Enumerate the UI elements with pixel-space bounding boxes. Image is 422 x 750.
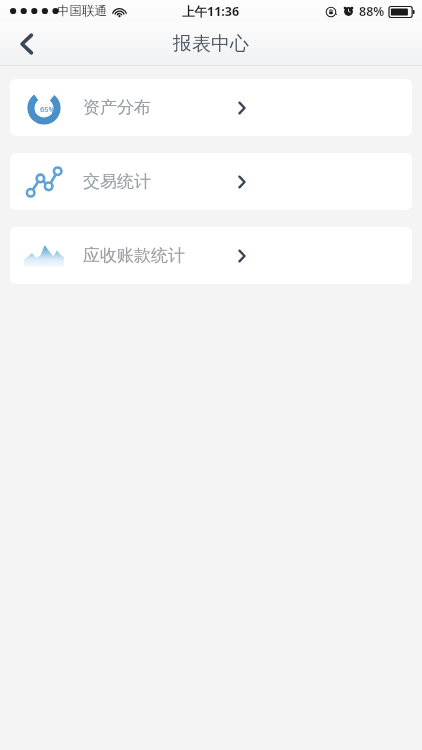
staticText: 上午11:36 xyxy=(182,3,240,20)
staticText: 报表中心 xyxy=(173,32,249,56)
button[interactable]: 交易统计 xyxy=(10,153,412,210)
staticText: 交易统计 xyxy=(83,171,151,192)
button[interactable]: 应收账款统计 xyxy=(10,227,412,284)
button[interactable]: 返回 xyxy=(4,22,48,66)
button[interactable]: 65% xyxy=(10,79,412,136)
staticText: 88% xyxy=(359,3,385,20)
staticText: 中国联通 xyxy=(57,3,107,19)
staticText: 应收账款统计 xyxy=(83,245,185,266)
staticText: 资产分布 xyxy=(83,97,151,118)
staticText: 65% xyxy=(40,104,55,114)
